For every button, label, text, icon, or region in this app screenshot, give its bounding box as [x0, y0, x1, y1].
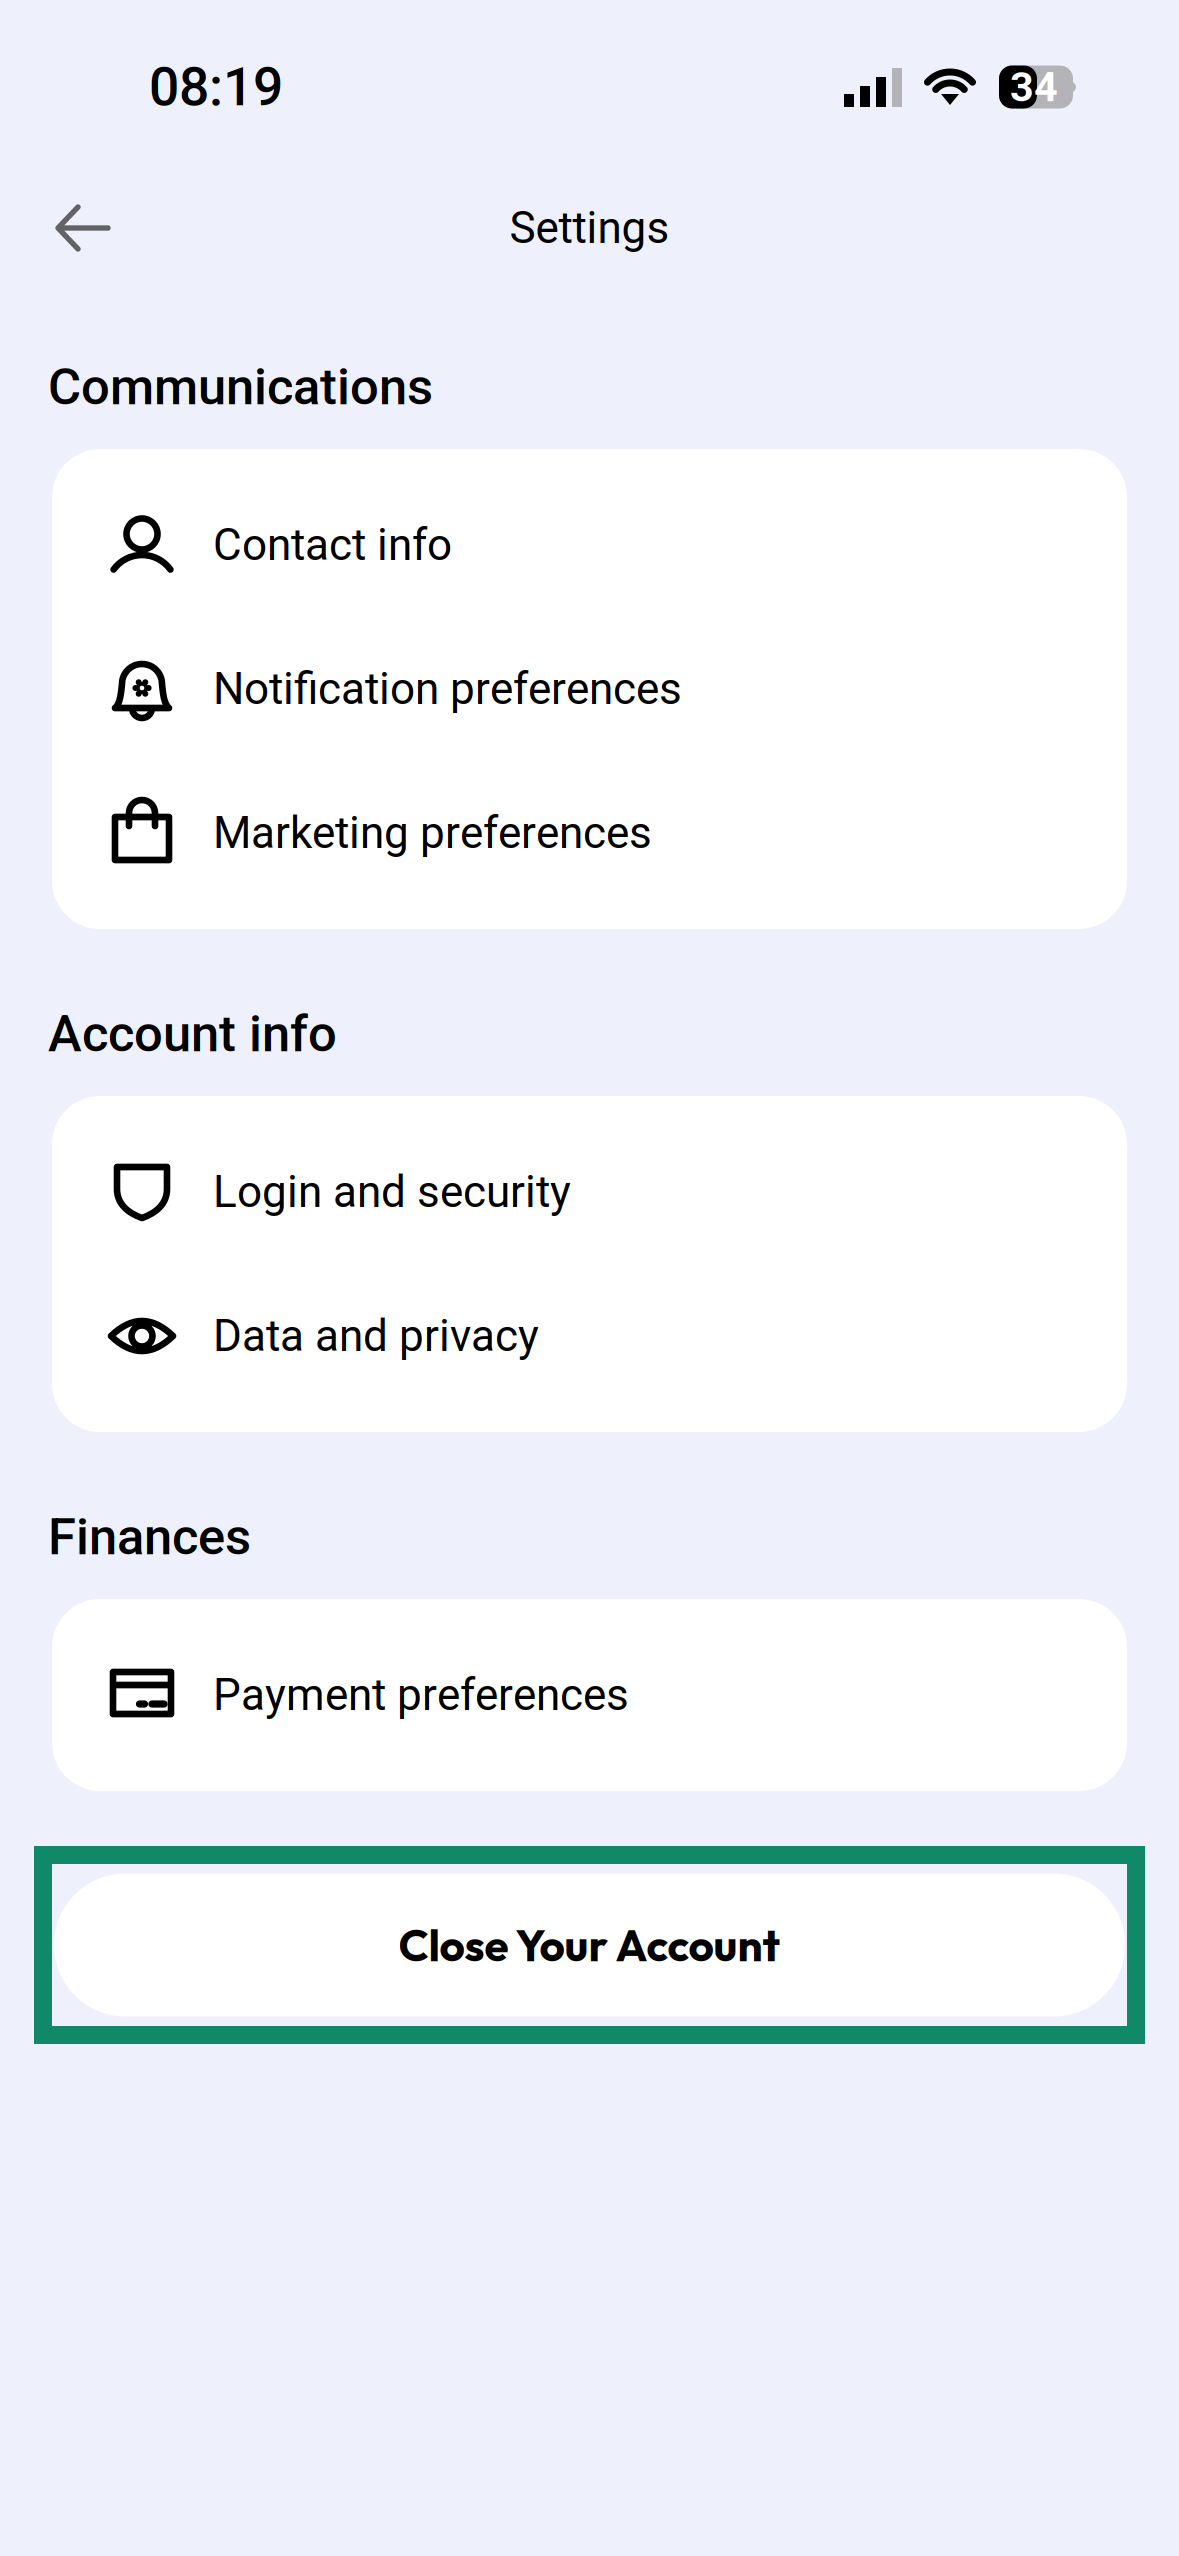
staticText: Contact info — [213, 519, 452, 571]
button[interactable]: Back — [0, 174, 138, 282]
staticText: Login and security — [213, 1166, 571, 1218]
staticText: 08:19 — [149, 56, 283, 118]
staticText: Marketing preferences — [213, 807, 652, 859]
staticText: Notification preferences — [213, 663, 682, 715]
button[interactable]: Close Your Account — [34, 1846, 1145, 2044]
button[interactable]: Marketing preferences — [52, 761, 1127, 905]
staticText: Finances — [48, 1507, 251, 1567]
staticText: Data and privacy — [213, 1310, 539, 1362]
staticText: Close Your Account — [398, 1917, 780, 1973]
staticText: 34 — [1010, 63, 1058, 111]
staticText: Settings — [509, 202, 669, 254]
button[interactable]: Login and security — [52, 1120, 1127, 1264]
staticText: Communications — [48, 357, 433, 417]
button[interactable]: Payment preferences — [52, 1623, 1127, 1767]
staticText: Payment preferences — [213, 1669, 629, 1721]
button[interactable]: Contact info — [52, 473, 1127, 617]
staticText: Account info — [48, 1004, 337, 1064]
button[interactable]: Notification preferences — [52, 617, 1127, 761]
button[interactable]: Data and privacy — [52, 1264, 1127, 1408]
